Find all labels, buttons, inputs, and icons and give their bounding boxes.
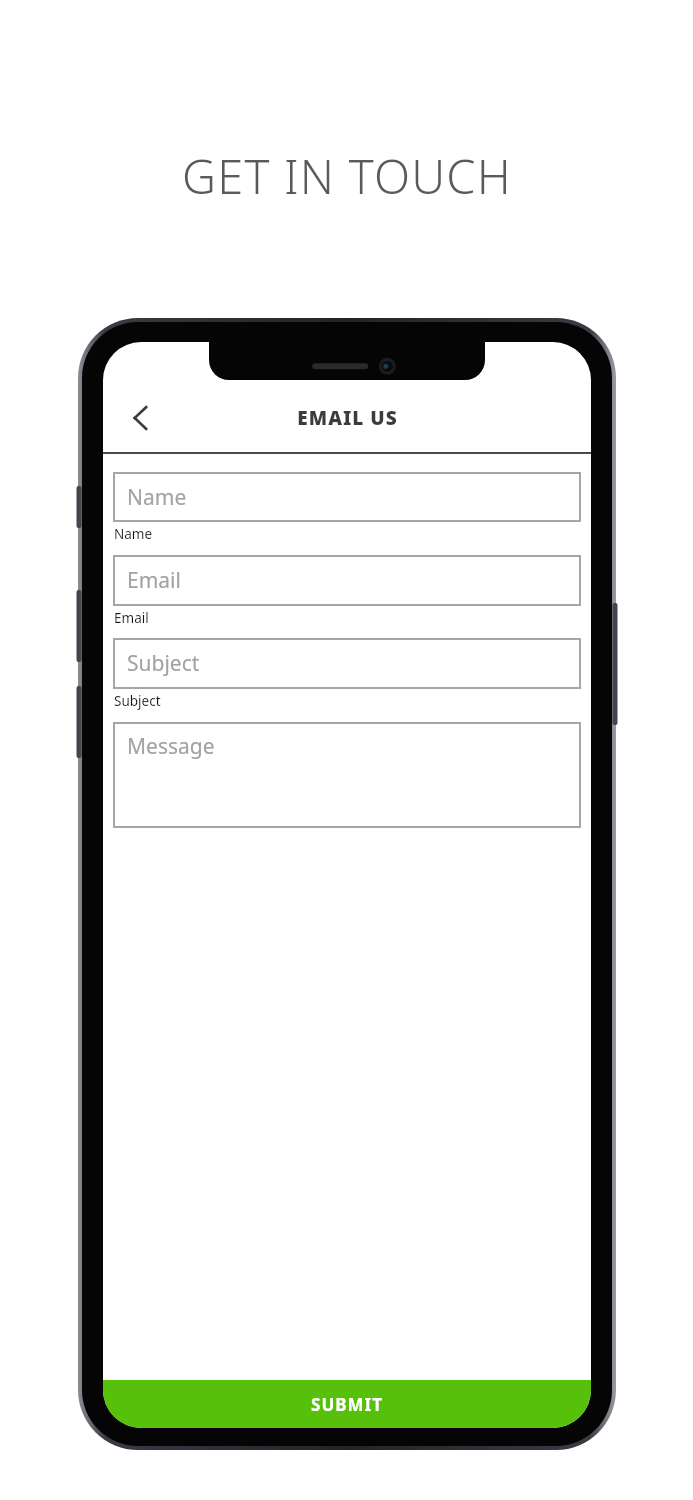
staticText: Message (127, 732, 215, 761)
staticText: Email (127, 566, 181, 595)
staticText: SUBMIT (311, 1393, 383, 1416)
button[interactable]: Back (117, 392, 169, 444)
staticText: Name (114, 525, 153, 543)
staticText: GET IN TOUCH (182, 144, 512, 208)
button[interactable]: Email (113, 555, 581, 606)
staticText: Email (114, 609, 149, 627)
staticText: Name (127, 483, 187, 512)
staticText: EMAIL US (297, 405, 398, 431)
button[interactable]: Name (113, 472, 581, 522)
button[interactable]: SUBMIT (103, 1380, 591, 1428)
button[interactable]: Message (113, 722, 581, 828)
staticText: Subject (114, 692, 161, 710)
staticText: Subject (127, 649, 200, 678)
button[interactable]: Subject (113, 638, 581, 689)
